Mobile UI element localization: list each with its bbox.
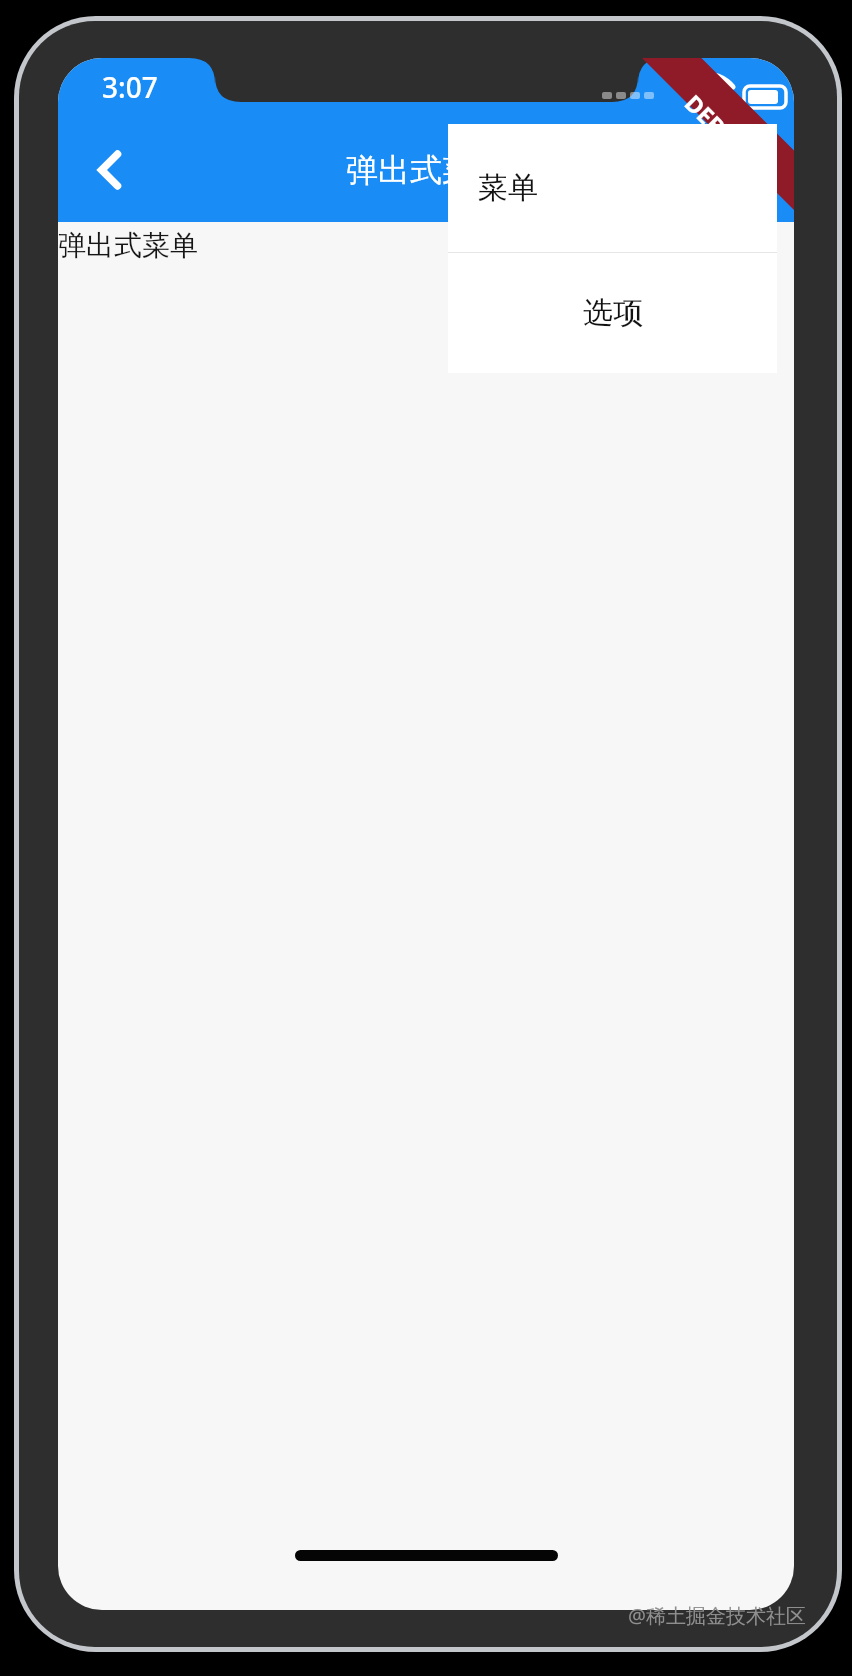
button[interactable]: 选项 xyxy=(448,253,777,373)
button[interactable]: Back xyxy=(74,134,146,206)
staticText: @稀土掘金技术社区 xyxy=(628,1602,806,1629)
button[interactable]: 菜单 xyxy=(448,124,777,252)
staticText: DEBUG xyxy=(679,87,757,166)
staticText: 弹出式菜单 xyxy=(58,228,198,263)
staticText: 3:07 xyxy=(102,68,158,106)
staticText: 弹出式菜单 xyxy=(346,150,506,190)
staticText: 选项 xyxy=(583,294,643,332)
staticText: 菜单 xyxy=(478,169,538,207)
